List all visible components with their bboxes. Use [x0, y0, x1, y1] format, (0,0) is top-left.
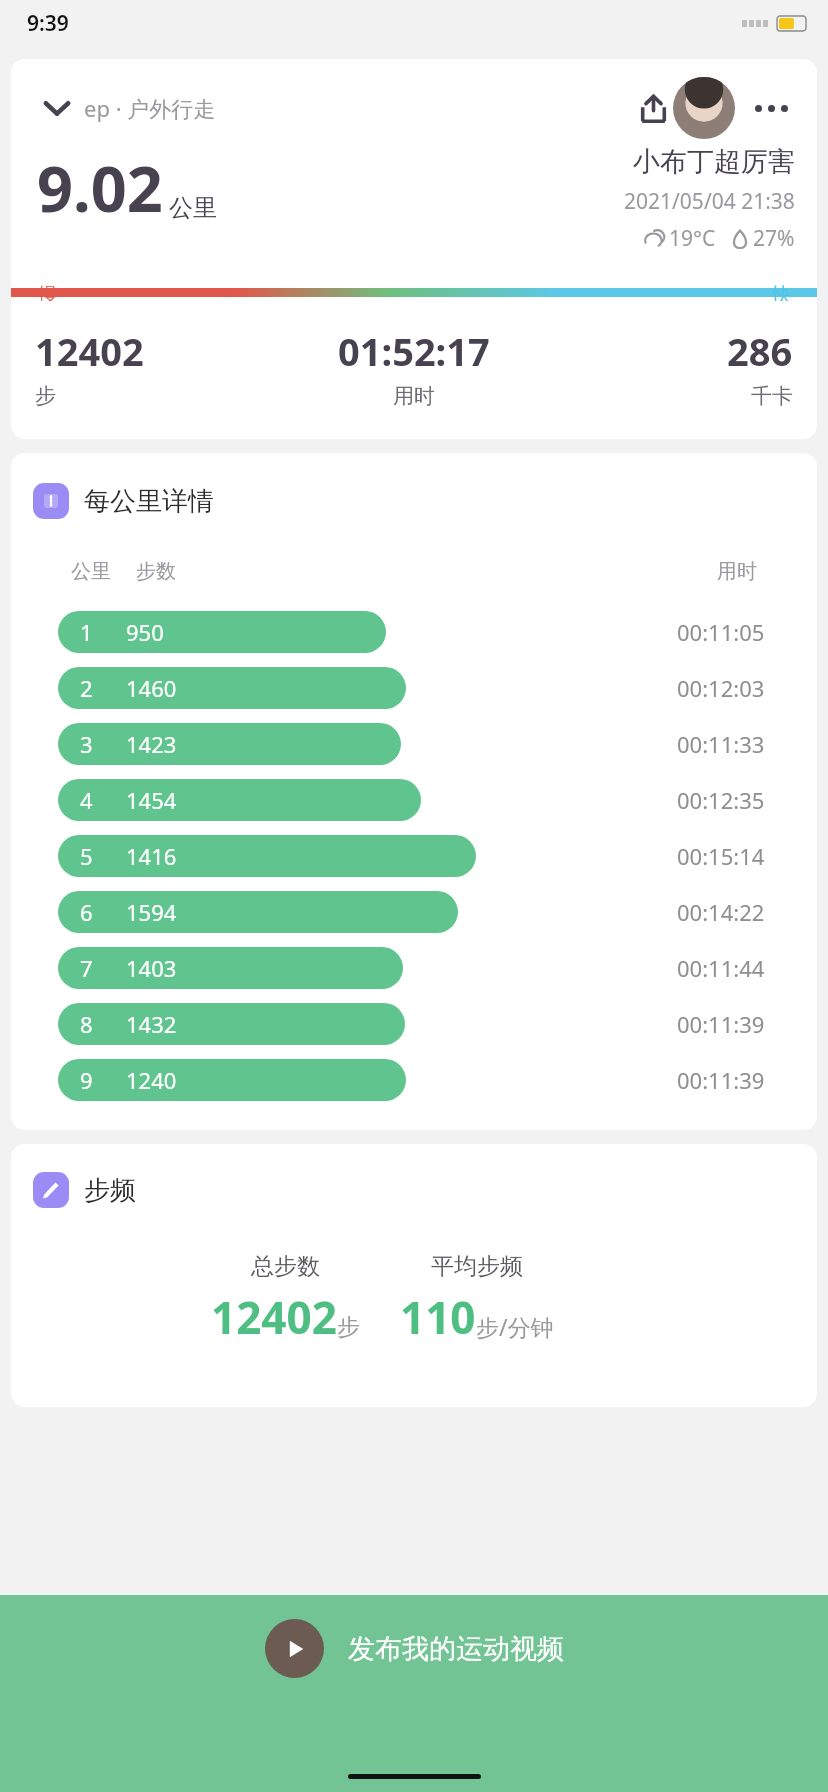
staticText: 公里: [71, 559, 111, 584]
button[interactable]: Profile: [673, 77, 735, 139]
button[interactable]: More options: [743, 80, 799, 136]
staticText: 1240: [126, 1065, 177, 1095]
staticText: 6: [80, 897, 93, 927]
staticText: 1423: [126, 729, 177, 759]
staticText: 1432: [126, 1009, 177, 1039]
staticText: 00:15:14: [677, 841, 765, 871]
button[interactable]: 9: [11, 1052, 817, 1108]
staticText: 27%: [753, 224, 795, 253]
button[interactable]: 步频: [33, 1172, 136, 1208]
button[interactable]: 7: [11, 940, 817, 996]
staticText: 3: [80, 729, 93, 759]
staticText: 8: [80, 1009, 93, 1039]
staticText: 19°C: [669, 224, 716, 253]
staticText: 7: [80, 953, 93, 983]
staticText: 1460: [126, 673, 177, 703]
staticText: 00:14:22: [677, 897, 765, 927]
staticText: 公里: [169, 193, 217, 223]
button[interactable]: 1: [11, 604, 817, 660]
staticText: 01:52:17: [338, 325, 490, 377]
staticText: 12402: [211, 1287, 337, 1347]
staticText: 用时: [717, 559, 757, 584]
staticText: 1454: [126, 785, 177, 815]
staticText: 110: [400, 1287, 476, 1347]
staticText: 小布丁超厉害: [633, 145, 795, 179]
staticText: 1403: [126, 953, 177, 983]
staticText: 步: [35, 383, 56, 409]
staticText: 00:11:33: [677, 729, 765, 759]
button[interactable]: 2: [11, 660, 817, 716]
staticText: 950: [126, 617, 164, 647]
staticText: 9.02: [37, 145, 163, 231]
staticText: 00:11:39: [677, 1009, 765, 1039]
staticText: 00:12:35: [677, 785, 765, 815]
staticText: 9: [80, 1065, 93, 1095]
button[interactable]: 5: [11, 828, 817, 884]
staticText: 步频: [84, 1174, 136, 1207]
staticText: 00:11:05: [677, 617, 765, 647]
staticText: 9:39: [27, 9, 69, 38]
staticText: 快: [772, 283, 791, 301]
button[interactable]: Share: [625, 80, 681, 136]
staticText: ep · 户外行走: [84, 93, 216, 123]
button[interactable]: Collapse: [30, 81, 216, 135]
staticText: 平均步频: [431, 1252, 523, 1281]
staticText: 2: [80, 673, 93, 703]
staticText: 用时: [393, 383, 435, 409]
staticText: 1416: [126, 841, 177, 871]
staticText: 发布我的运动视频: [348, 1632, 564, 1666]
staticText: 慢: [39, 283, 58, 301]
button[interactable]: 3: [11, 716, 817, 772]
staticText: 00:12:03: [677, 673, 765, 703]
staticText: 2021/05/04 21:38: [624, 187, 795, 216]
staticText: 每公里详情: [84, 485, 214, 518]
staticText: 1: [80, 617, 93, 647]
staticText: 千卡: [751, 383, 793, 409]
staticText: 00:11:39: [677, 1065, 765, 1095]
staticText: 12402: [35, 325, 144, 377]
button[interactable]: 每公里详情: [33, 483, 214, 519]
staticText: 总步数: [251, 1252, 320, 1281]
button[interactable]: 4: [11, 772, 817, 828]
staticText: 步数: [136, 559, 176, 584]
button[interactable]: 8: [11, 996, 817, 1052]
staticText: 286: [727, 325, 793, 377]
staticText: 4: [80, 785, 93, 815]
staticText: 00:11:44: [677, 953, 765, 983]
staticText: 1594: [126, 897, 177, 927]
button[interactable]: 6: [11, 884, 817, 940]
staticText: 步: [337, 1313, 360, 1342]
staticText: 5: [80, 841, 93, 871]
button[interactable]: 发布我的运动视频: [265, 1619, 564, 1678]
staticText: 步/分钟: [476, 1311, 554, 1342]
